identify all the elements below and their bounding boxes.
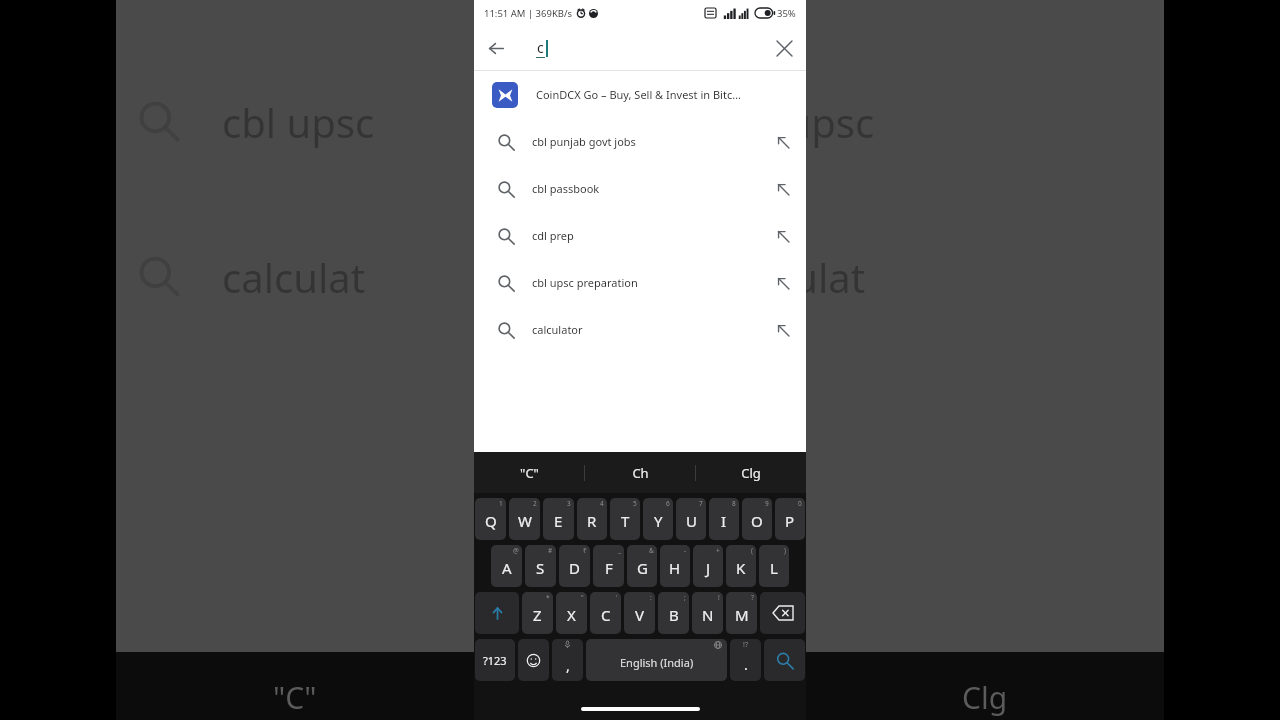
button[interactable]: _ <box>593 545 624 587</box>
button[interactable]: " <box>556 592 587 634</box>
button[interactable]: Period <box>730 639 761 681</box>
staticText: - <box>684 546 687 555</box>
button[interactable]: Shift <box>475 592 519 634</box>
button[interactable]: "C" <box>474 452 584 493</box>
staticText: , <box>566 656 570 675</box>
staticText: cbl upsc <box>722 95 875 149</box>
staticText: L <box>770 558 778 578</box>
button[interactable]: Back <box>474 26 518 70</box>
button[interactable]: 7 <box>676 498 706 540</box>
staticText: calculat <box>722 250 866 304</box>
staticText: c <box>537 38 544 57</box>
button[interactable]: Insert suggestion <box>766 313 800 347</box>
staticText: ' <box>616 593 618 602</box>
button[interactable]: Insert suggestion <box>766 125 800 159</box>
staticText: W <box>518 511 532 531</box>
staticText: V <box>635 605 645 625</box>
button[interactable]: Insert suggestion <box>766 219 800 253</box>
staticText: B <box>669 605 679 625</box>
button[interactable]: : <box>624 592 655 634</box>
staticText: calculator <box>532 322 583 337</box>
button[interactable]: 3 <box>543 498 574 540</box>
button[interactable]: ) <box>759 545 789 587</box>
staticText: ₹ <box>583 546 587 555</box>
button[interactable]: Emoji <box>518 639 549 681</box>
staticText: K <box>736 558 746 578</box>
button[interactable]: 9 <box>742 498 772 540</box>
staticText: + <box>716 546 720 555</box>
staticText: & <box>649 546 654 555</box>
button[interactable]: 1 <box>475 498 506 540</box>
button[interactable]: Comma <box>552 639 583 681</box>
staticText: cbl punjab govt jobs <box>532 134 636 149</box>
button[interactable]: ' <box>590 592 621 634</box>
staticText: cbl upsc <box>222 95 375 149</box>
staticText: Ch <box>632 464 649 482</box>
button[interactable]: Clg <box>696 452 806 493</box>
button[interactable]: 0 <box>775 498 805 540</box>
button[interactable]: 8 <box>709 498 739 540</box>
button[interactable]: cbl punjab govt jobs <box>474 118 806 165</box>
button[interactable]: ₹ <box>559 545 590 587</box>
button[interactable]: CoinDCX Go – Buy, Sell & Invest in Bitc… <box>474 71 806 118</box>
staticText: E <box>554 511 563 531</box>
button[interactable]: Ch <box>585 452 695 493</box>
button[interactable]: # <box>525 545 556 587</box>
staticText: 7 <box>699 499 703 508</box>
button[interactable]: cbl upsc preparation <box>474 259 806 306</box>
staticText: cdl prep <box>532 228 574 243</box>
button[interactable]: cbl passbook <box>474 165 806 212</box>
staticText: cbl upsc preparation <box>532 275 638 290</box>
button[interactable]: & <box>627 545 657 587</box>
button[interactable]: ! <box>692 592 723 634</box>
staticText: R <box>587 511 597 531</box>
staticText: A <box>502 558 512 578</box>
staticText: !? <box>743 640 748 650</box>
staticText: G <box>637 558 648 578</box>
staticText: * <box>546 593 550 602</box>
button[interactable]: + <box>693 545 723 587</box>
staticText: _ <box>618 546 621 555</box>
button[interactable]: ?123 <box>475 639 515 681</box>
button[interactable]: 5 <box>610 498 640 540</box>
staticText: ! <box>718 593 720 602</box>
button[interactable]: Insert suggestion <box>766 172 800 206</box>
staticText: I <box>721 511 727 531</box>
staticText: "C" <box>273 677 317 718</box>
button[interactable]: cdl prep <box>474 212 806 259</box>
staticText: Clg <box>741 464 761 482</box>
staticText: T <box>621 511 630 531</box>
button[interactable]: calculator <box>474 306 806 353</box>
staticText: Z <box>533 605 542 625</box>
button[interactable]: 6 <box>643 498 673 540</box>
staticText: ( <box>751 546 753 555</box>
staticText: F <box>605 558 613 578</box>
staticText: D <box>569 558 580 578</box>
button[interactable]: Search <box>764 639 805 681</box>
staticText: C <box>601 605 611 625</box>
staticText: 8 <box>732 499 736 508</box>
button[interactable]: ; <box>658 592 689 634</box>
staticText: ; <box>684 593 686 602</box>
button[interactable]: ( <box>726 545 756 587</box>
button[interactable]: Space <box>586 639 727 681</box>
staticText: 3 <box>567 499 571 508</box>
button[interactable]: - <box>660 545 690 587</box>
button[interactable]: * <box>522 592 553 634</box>
staticText: J <box>706 558 711 578</box>
staticText: S <box>536 558 545 578</box>
staticText: 0 <box>798 499 802 508</box>
staticText: 9 <box>765 499 769 508</box>
button[interactable]: ? <box>726 592 757 634</box>
staticText: 1 <box>499 499 503 508</box>
button[interactable]: Insert suggestion <box>766 266 800 300</box>
button[interactable]: 4 <box>577 498 607 540</box>
button[interactable]: @ <box>491 545 522 587</box>
button[interactable]: 2 <box>509 498 540 540</box>
staticText: # <box>548 546 553 555</box>
button[interactable]: Clear search <box>762 26 806 70</box>
button[interactable]: Backspace <box>760 592 805 634</box>
staticText: @ <box>513 546 519 555</box>
staticText: CoinDCX Go – Buy, Sell & Invest in Bitc… <box>536 87 741 102</box>
staticText: ?123 <box>483 653 507 668</box>
